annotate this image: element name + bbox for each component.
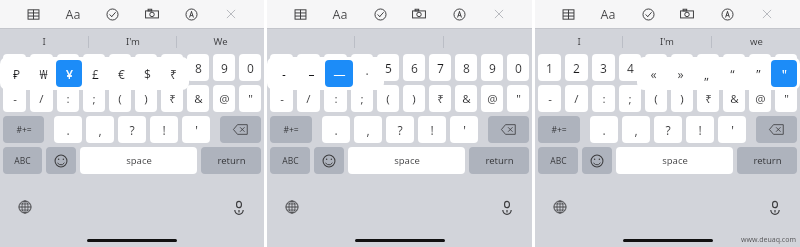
button[interactable]: /: [565, 85, 588, 112]
button[interactable]: ,: [622, 116, 650, 143]
button[interactable]: €: [108, 60, 134, 87]
button[interactable]: !: [150, 116, 178, 143]
button[interactable]: —: [325, 60, 353, 87]
button[interactable]: Aa: [62, 3, 84, 25]
button[interactable]: ₹: [160, 60, 186, 87]
button[interactable]: 4: [619, 54, 641, 81]
button[interactable]: Change keyboard: [281, 196, 303, 218]
button[interactable]: ABC: [270, 147, 310, 174]
button[interactable]: 5: [109, 54, 131, 81]
button[interactable]: „: [693, 60, 719, 87]
button[interactable]: :: [57, 85, 79, 112]
button[interactable]: ?: [118, 116, 146, 143]
button[interactable]: «: [640, 60, 667, 87]
button[interactable]: ₹: [161, 85, 183, 112]
button[interactable]: I'm: [89, 29, 176, 54]
button[interactable]: return: [469, 147, 529, 174]
button[interactable]: ): [671, 85, 693, 112]
button[interactable]: Change keyboard: [14, 196, 36, 218]
button[interactable]: ABC: [3, 147, 42, 174]
button[interactable]: Delete: [220, 116, 261, 143]
button[interactable]: Dictation: [228, 196, 250, 218]
button[interactable]: ;: [351, 85, 373, 112]
button[interactable]: 9: [749, 54, 771, 81]
button[interactable]: ,: [354, 116, 382, 143]
button[interactable]: Close: [220, 3, 242, 25]
button[interactable]: 4: [351, 54, 373, 81]
button[interactable]: Camera: [676, 3, 698, 25]
button[interactable]: Emoji: [314, 147, 344, 174]
button[interactable]: $: [134, 60, 160, 87]
button[interactable]: we: [712, 29, 800, 54]
button[interactable]: &: [187, 85, 209, 112]
button[interactable]: Emoji: [582, 147, 612, 174]
button[interactable]: 4: [83, 54, 105, 81]
button[interactable]: -: [270, 60, 297, 87]
button[interactable]: Dictation: [496, 196, 518, 218]
button[interactable]: Check: [369, 3, 391, 25]
button[interactable]: (: [109, 85, 131, 112]
button[interactable]: ·: [353, 60, 381, 87]
button[interactable]: ": [771, 60, 797, 87]
button[interactable]: -: [270, 85, 293, 112]
button[interactable]: !: [418, 116, 446, 143]
button[interactable]: 7: [429, 54, 451, 81]
button[interactable]: ₹: [697, 85, 719, 112]
button[interactable]: ₹: [429, 85, 451, 112]
button[interactable]: ': [182, 116, 210, 143]
button[interactable]: I: [0, 29, 88, 54]
button[interactable]: :: [592, 85, 615, 112]
button[interactable]: Camera: [141, 3, 163, 25]
button[interactable]: Table: [557, 3, 579, 25]
button[interactable]: 1: [3, 54, 26, 81]
button[interactable]: 3: [592, 54, 615, 81]
button[interactable]: Check: [101, 3, 123, 25]
button[interactable]: ABC: [538, 147, 578, 174]
button[interactable]: #+=: [270, 116, 312, 143]
button[interactable]: ₩: [30, 60, 56, 87]
button[interactable]: ": [507, 85, 529, 112]
button[interactable]: /: [30, 85, 53, 112]
button[interactable]: &: [723, 85, 745, 112]
button[interactable]: 6: [135, 54, 157, 81]
button[interactable]: ;: [619, 85, 641, 112]
button[interactable]: ₽: [3, 60, 30, 87]
button[interactable]: 8: [455, 54, 477, 81]
button[interactable]: 0: [507, 54, 529, 81]
button[interactable]: -: [3, 85, 26, 112]
button[interactable]: Table: [289, 3, 311, 25]
button[interactable]: 1: [270, 54, 293, 81]
button[interactable]: Table: [22, 3, 44, 25]
button[interactable]: 8: [723, 54, 745, 81]
button[interactable]: .: [590, 116, 618, 143]
button[interactable]: .: [54, 116, 82, 143]
button[interactable]: 5: [645, 54, 667, 81]
button[interactable]: #+=: [3, 116, 44, 143]
button[interactable]: 0: [239, 54, 261, 81]
button[interactable]: Delete: [756, 116, 797, 143]
button[interactable]: space: [348, 147, 465, 174]
button[interactable]: Aa: [597, 3, 619, 25]
button[interactable]: -: [538, 85, 561, 112]
button[interactable]: ?: [386, 116, 414, 143]
button[interactable]: Close: [488, 3, 510, 25]
button[interactable]: Delete: [488, 116, 529, 143]
button[interactable]: Change keyboard: [549, 196, 571, 218]
button[interactable]: ": [239, 85, 261, 112]
button[interactable]: 3: [324, 54, 347, 81]
button[interactable]: return: [201, 147, 261, 174]
button[interactable]: 9: [481, 54, 503, 81]
button[interactable]: &: [455, 85, 477, 112]
button[interactable]: Emoji: [46, 147, 76, 174]
button[interactable]: ¥: [56, 60, 82, 87]
button[interactable]: @: [749, 85, 771, 112]
button[interactable]: Close: [756, 3, 778, 25]
button[interactable]: Dictation: [764, 196, 786, 218]
button[interactable]: 6: [671, 54, 693, 81]
button[interactable]: 2: [30, 54, 53, 81]
button[interactable]: .: [322, 116, 350, 143]
button[interactable]: I: [535, 29, 622, 54]
